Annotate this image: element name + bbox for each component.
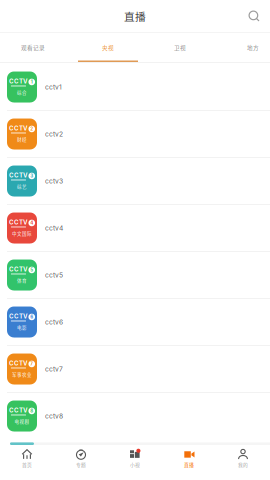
button[interactable]: CCTV <box>0 346 270 393</box>
staticText: 3 <box>30 173 33 179</box>
staticText: 军事农业 <box>12 371 32 377</box>
staticText: 专题 <box>76 461 86 468</box>
staticText: cctv3 <box>45 177 63 185</box>
button[interactable]: CCTV <box>0 111 270 158</box>
staticText: 央视 <box>102 43 114 51</box>
button[interactable]: 专题 <box>54 447 108 469</box>
staticText: cctv8 <box>45 412 63 420</box>
button[interactable]: CCTV <box>0 205 270 252</box>
button[interactable]: 央视 <box>66 33 150 62</box>
button[interactable]: 直播 <box>162 447 216 469</box>
button[interactable]: CCTV <box>0 393 270 440</box>
staticText: 6 <box>30 314 33 320</box>
staticText: 综合 <box>17 89 27 95</box>
staticText: 中文国际 <box>12 230 32 236</box>
staticText: CCTV <box>9 172 28 179</box>
button[interactable]: Search <box>238 3 270 29</box>
button[interactable]: 观看记录 <box>0 33 66 62</box>
staticText: 卫视 <box>174 43 186 51</box>
staticText: 电视剧 <box>14 418 29 424</box>
staticText: cctv2 <box>45 130 63 138</box>
button[interactable]: 卫视 <box>150 33 210 62</box>
staticText: 2 <box>30 126 33 132</box>
staticText: 观看记录 <box>21 43 45 51</box>
staticText: 4 <box>30 220 33 226</box>
button[interactable]: 我的 <box>216 447 270 469</box>
staticText: CCTV <box>9 78 28 85</box>
button[interactable]: 地方 <box>236 33 270 62</box>
staticText: cctv7 <box>45 365 63 373</box>
staticText: CCTV <box>9 219 28 226</box>
button[interactable]: CCTV <box>0 64 270 111</box>
staticText: CCTV <box>9 125 28 132</box>
staticText: 5 <box>30 267 33 273</box>
staticText: 地方 <box>247 43 259 51</box>
staticText: 我的 <box>238 461 248 468</box>
staticText: 直播 <box>184 461 194 468</box>
button[interactable]: CCTV <box>0 299 270 346</box>
button[interactable]: CCTV <box>0 158 270 205</box>
staticText: CCTV <box>9 313 28 320</box>
staticText: cctv5 <box>45 271 63 279</box>
staticText: 7 <box>30 361 33 367</box>
staticText: 电影 <box>17 324 27 330</box>
staticText: 直播 <box>124 8 146 24</box>
staticText: CCTV <box>9 407 28 414</box>
button[interactable]: 小视 <box>108 447 162 469</box>
staticText: cctv1 <box>45 83 62 91</box>
staticText: 小视 <box>130 461 140 468</box>
staticText: 综艺 <box>17 183 27 189</box>
staticText: CCTV <box>9 266 28 273</box>
staticText: 8 <box>30 408 33 414</box>
staticText: 首页 <box>22 461 32 468</box>
staticText: cctv4 <box>45 224 63 232</box>
staticText: cctv6 <box>45 318 63 326</box>
button[interactable]: 首页 <box>0 447 54 469</box>
staticText: CCTV <box>9 360 28 367</box>
button[interactable]: CCTV <box>0 252 270 299</box>
staticText: 1 <box>31 79 33 85</box>
staticText: 财经 <box>17 136 27 142</box>
staticText: 体育 <box>17 277 27 283</box>
